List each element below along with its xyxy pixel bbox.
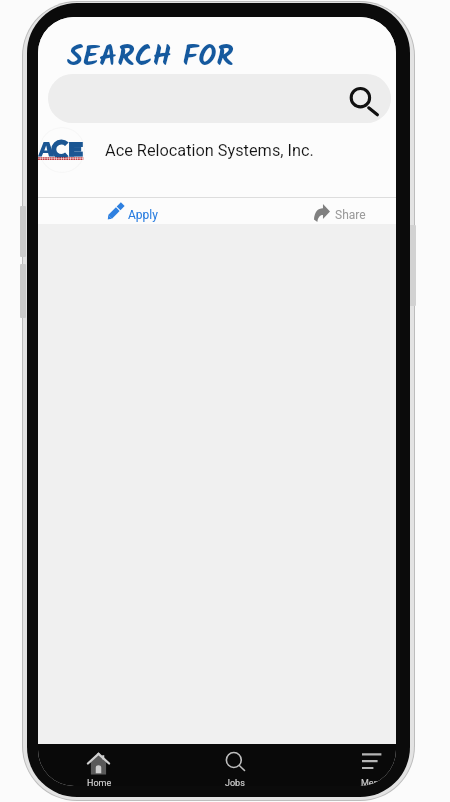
button[interactable]: Jobs <box>201 744 269 786</box>
other: Home <box>87 752 110 775</box>
other: Jobs <box>225 752 246 773</box>
staticText: Apply <box>128 208 158 222</box>
staticText: Jobs <box>225 778 245 786</box>
other: Share <box>314 204 330 222</box>
button[interactable] <box>38 125 396 196</box>
staticText: Home <box>87 778 112 786</box>
staticText: Share <box>335 208 366 222</box>
button[interactable]: Home <box>65 744 133 786</box>
staticText: Ace Relocation Systems, Inc. <box>105 141 314 160</box>
button[interactable]: Share <box>306 198 378 223</box>
button[interactable]: Apply <box>98 198 170 223</box>
button[interactable]: Menu <box>338 744 396 786</box>
staticText: Menu <box>361 778 384 786</box>
button[interactable]: Search <box>48 74 391 123</box>
staticText: SEARCH FOR <box>67 34 234 80</box>
other: Search <box>346 83 382 119</box>
other: Menu <box>362 752 382 772</box>
other: Apply <box>108 203 124 219</box>
